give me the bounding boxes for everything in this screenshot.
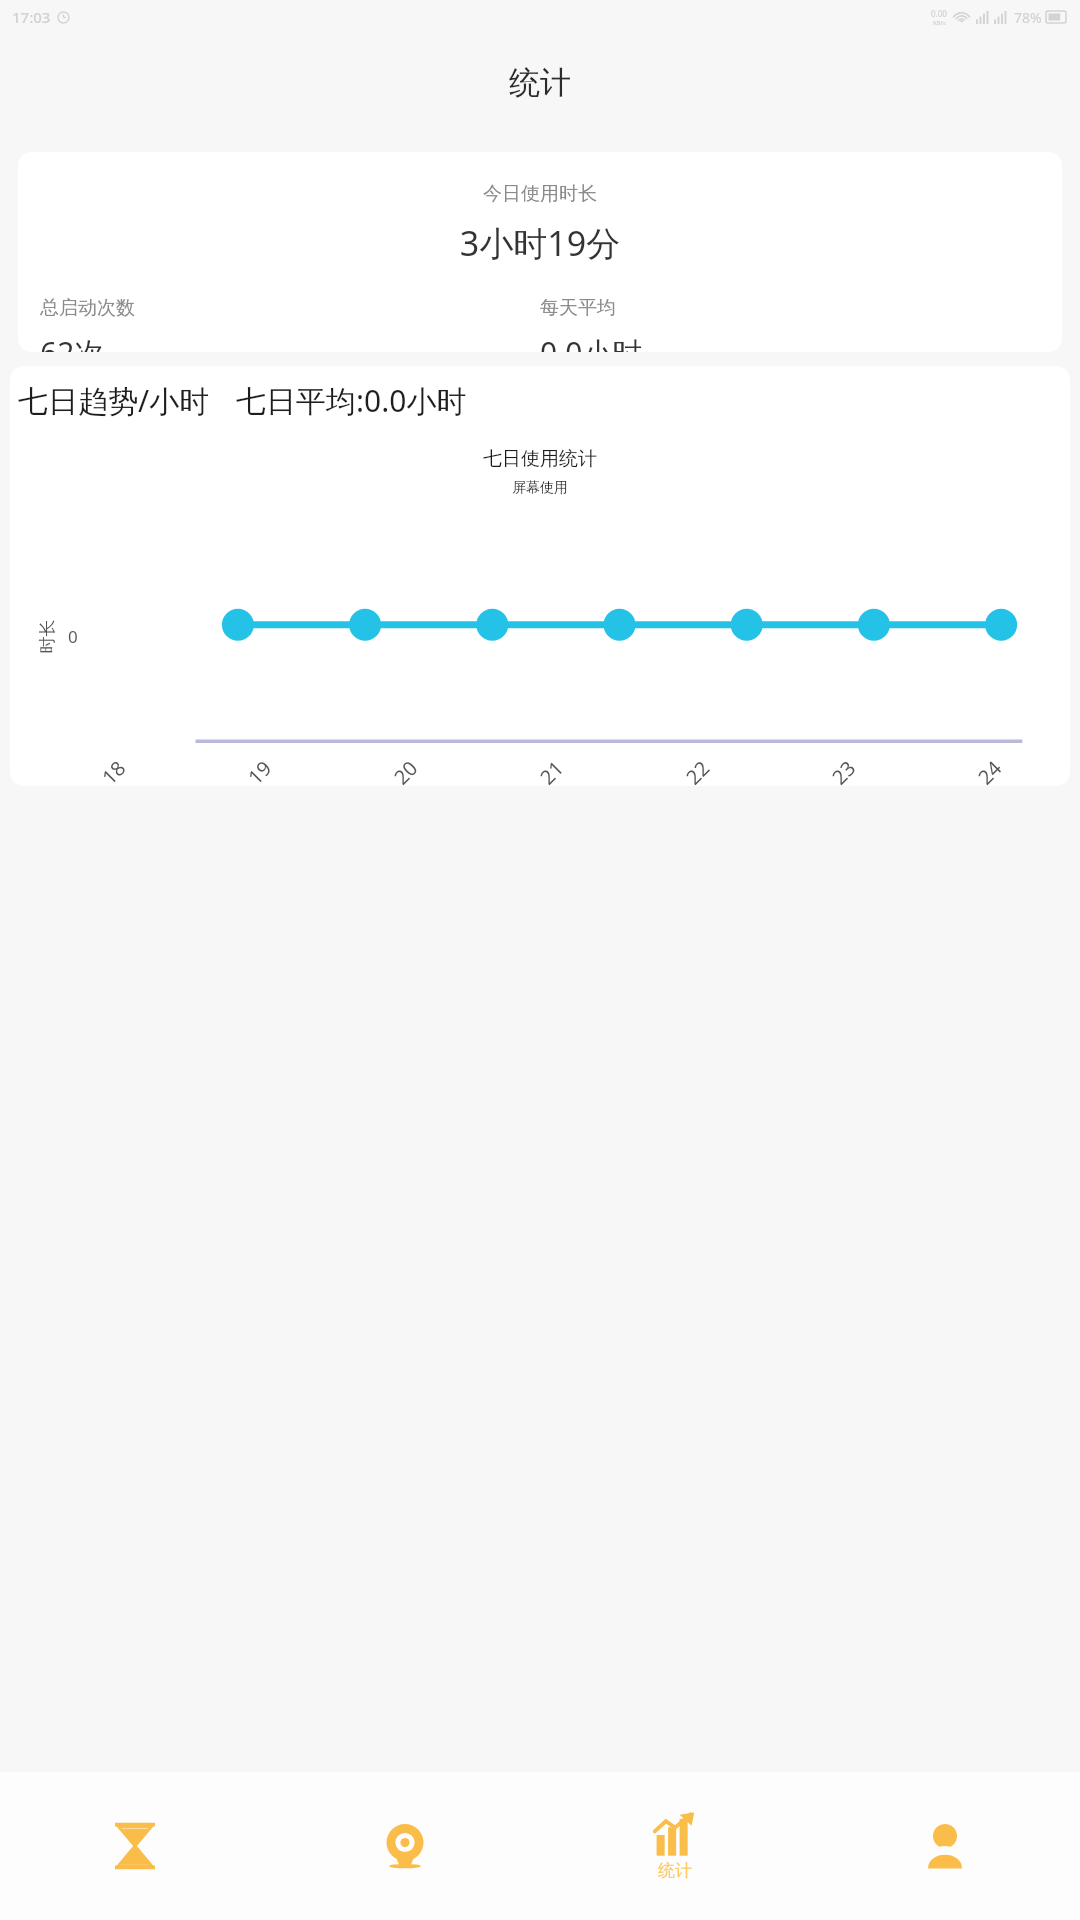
button[interactable]: 统计 bbox=[540, 1772, 810, 1920]
staticText: 17:03 bbox=[12, 7, 51, 27]
staticText: 24 bbox=[972, 755, 1007, 786]
staticText: 20 bbox=[388, 755, 423, 786]
staticText: 屏幕使用 bbox=[10, 479, 1070, 497]
staticText: 时长 bbox=[36, 619, 57, 653]
button[interactable]: Profile bbox=[810, 1772, 1080, 1920]
staticText: 七日使用统计 bbox=[10, 447, 1070, 471]
staticText: 23 bbox=[826, 755, 861, 786]
staticText: 62次 bbox=[40, 332, 105, 352]
staticText: 七日趋势/小时 bbox=[18, 380, 210, 421]
staticText: 0 bbox=[68, 625, 78, 648]
staticText: KB/s bbox=[933, 19, 946, 27]
staticText: 78% bbox=[1014, 8, 1042, 27]
staticText: 今日使用时长 bbox=[18, 182, 1062, 206]
staticText: 3小时19分 bbox=[18, 220, 1062, 266]
staticText: 七日平均:0.0小时 bbox=[236, 380, 467, 421]
staticText: 19 bbox=[242, 755, 277, 786]
staticText: 18 bbox=[96, 755, 131, 786]
staticText: 每天平均 bbox=[540, 296, 616, 320]
button[interactable]: Timer bbox=[0, 1772, 270, 1920]
staticText: 总启动次数 bbox=[40, 296, 135, 320]
button[interactable]: 今日使用时长 bbox=[18, 152, 1062, 352]
staticText: 统计 bbox=[509, 63, 571, 102]
staticText: 统计 bbox=[658, 1860, 692, 1881]
staticText: 21 bbox=[534, 755, 569, 786]
staticText: 0.0小时 bbox=[540, 332, 643, 352]
button[interactable]: Focus bbox=[270, 1772, 540, 1920]
staticText: 22 bbox=[680, 755, 715, 786]
staticText: 0.00 bbox=[931, 8, 947, 19]
button[interactable]: 七日趋势/小时 bbox=[10, 366, 1070, 786]
